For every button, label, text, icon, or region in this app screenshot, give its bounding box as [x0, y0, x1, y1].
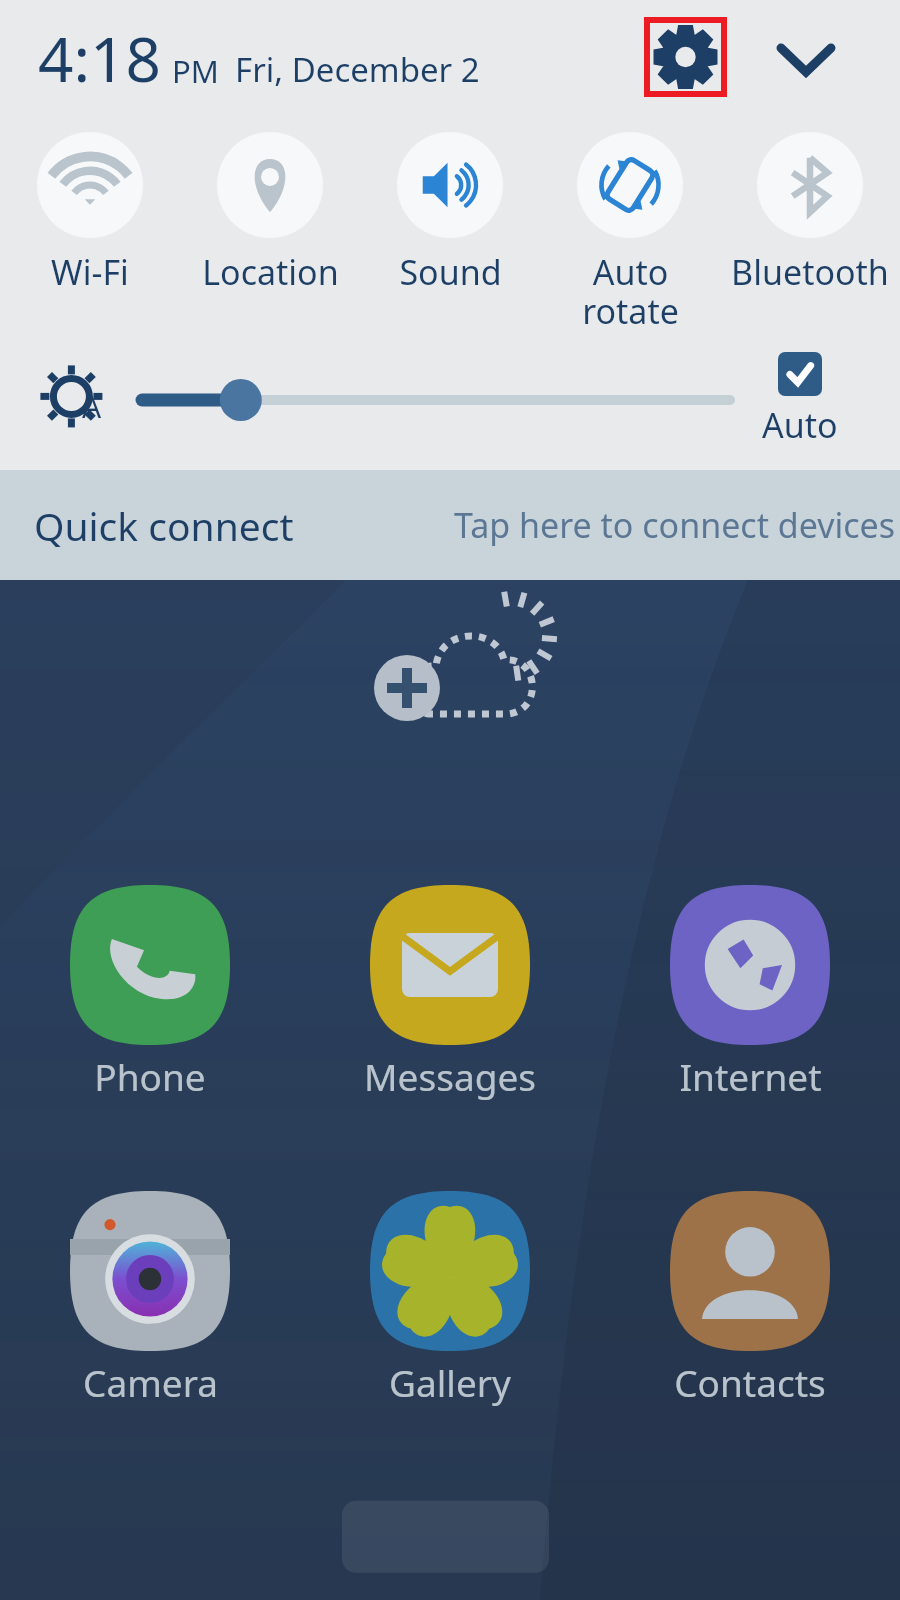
staticText: Camera — [83, 1357, 218, 1407]
button[interactable]: Bluetooth — [720, 115, 900, 340]
button[interactable]: Internet — [600, 885, 900, 1101]
button[interactable]: Add widget — [360, 600, 560, 730]
staticText: Tap here to connect devices — [454, 502, 896, 548]
staticText: Internet — [679, 1051, 822, 1101]
staticText: Messages — [364, 1051, 536, 1101]
button[interactable]: Collapse — [766, 18, 846, 98]
button[interactable]: Gallery — [300, 1191, 600, 1407]
button[interactable]: Messages — [300, 885, 600, 1101]
staticText: Sound — [399, 249, 502, 295]
staticText: 4:18 — [38, 16, 162, 100]
button[interactable]: Location — [180, 115, 360, 340]
button[interactable]: Settings — [650, 23, 721, 91]
staticText: Fri, December 2 — [235, 47, 480, 92]
button[interactable]: Sound — [360, 115, 540, 340]
staticText: Location — [202, 249, 339, 295]
button[interactable]: Contacts — [600, 1191, 900, 1407]
staticText: Bluetooth — [731, 249, 889, 295]
staticText: PM — [172, 50, 219, 92]
button[interactable]: Phone — [0, 885, 300, 1101]
button[interactable]: Wi-Fi — [0, 115, 180, 340]
button[interactable]: Camera — [0, 1191, 300, 1407]
staticText: A — [82, 386, 102, 427]
button[interactable]: Auto rotate — [540, 115, 720, 340]
staticText: Gallery — [389, 1357, 511, 1407]
button[interactable]: Auto — [752, 352, 848, 448]
staticText: Contacts — [674, 1357, 826, 1407]
button[interactable]: Auto brightness — [30, 355, 120, 445]
staticText: Auto — [762, 402, 838, 448]
staticText: Auto rotate — [582, 249, 679, 334]
staticText: Quick connect — [34, 499, 294, 552]
button[interactable]: Quick connect — [0, 470, 900, 580]
staticText: Phone — [94, 1051, 206, 1101]
staticText: Wi-Fi — [51, 249, 129, 295]
